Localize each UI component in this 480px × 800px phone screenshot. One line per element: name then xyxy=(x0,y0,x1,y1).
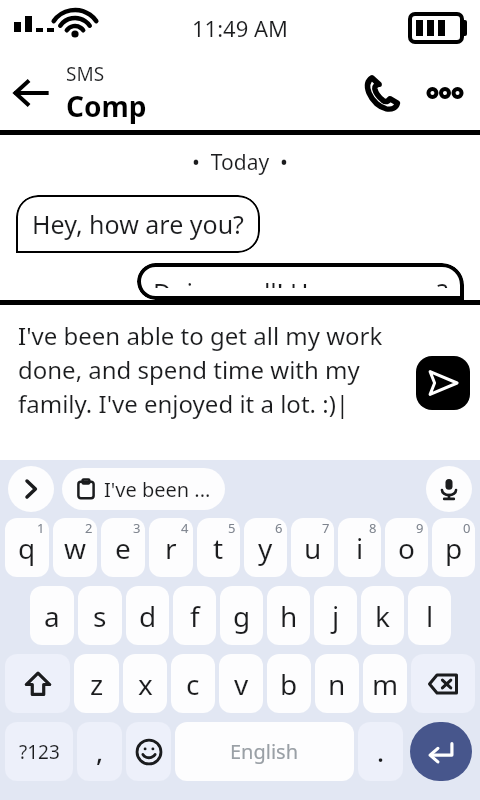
staticText: h xyxy=(280,597,298,635)
staticText: i xyxy=(356,529,364,567)
staticText: n xyxy=(328,665,346,703)
button[interactable]: h xyxy=(267,586,310,645)
button[interactable]: t xyxy=(197,518,240,577)
button[interactable]: k xyxy=(361,586,404,645)
button[interactable]: Expand toolbar xyxy=(8,466,54,512)
button[interactable]: Doing well! How are you? xyxy=(137,263,464,300)
button[interactable]: Hey, how are you? xyxy=(16,195,260,253)
staticText: d xyxy=(139,597,157,635)
button[interactable]: y xyxy=(244,518,287,577)
button[interactable]: Send xyxy=(416,356,470,410)
staticText: Comp xyxy=(66,87,147,125)
button[interactable]: I've been ... xyxy=(62,468,225,510)
button[interactable]: More options xyxy=(414,62,476,124)
staticText: 7 xyxy=(322,519,330,537)
button[interactable]: z xyxy=(74,654,119,713)
button[interactable]: Shift xyxy=(5,654,70,713)
staticText: x xyxy=(138,665,153,703)
staticText: I've been able to get all my work done, … xyxy=(18,319,410,420)
staticText: y xyxy=(258,529,273,567)
staticText: • Today • xyxy=(0,148,480,177)
staticText: t xyxy=(213,529,224,567)
staticText: , xyxy=(96,734,104,769)
staticText: ?123 xyxy=(19,739,60,765)
staticText: 11:49 AM xyxy=(192,13,288,43)
button[interactable]: Voice input xyxy=(426,466,472,512)
staticText: u xyxy=(304,529,322,567)
staticText: 4 xyxy=(181,519,189,537)
staticText: 8 xyxy=(369,519,377,537)
staticText: o xyxy=(398,529,415,567)
staticText: m xyxy=(372,665,399,703)
staticText: p xyxy=(445,529,463,567)
button[interactable]: b xyxy=(267,654,311,713)
button[interactable]: Backspace xyxy=(411,654,475,713)
staticText: w xyxy=(64,529,87,567)
button[interactable]: . xyxy=(358,722,403,781)
staticText: Doing well! How are you? xyxy=(153,275,448,288)
staticText: 2 xyxy=(85,519,93,537)
staticText: g xyxy=(233,597,251,635)
staticText: j xyxy=(332,597,340,635)
staticText: v xyxy=(234,665,249,703)
button[interactable]: , xyxy=(77,722,122,781)
button[interactable]: g xyxy=(220,586,263,645)
button[interactable]: l xyxy=(408,586,451,645)
button[interactable]: I've been able to get all my work done, … xyxy=(0,305,416,460)
staticText: I've been ... xyxy=(104,476,211,503)
staticText: a xyxy=(44,597,60,635)
button[interactable]: j xyxy=(314,586,357,645)
button[interactable]: f xyxy=(173,586,216,645)
button[interactable]: Call xyxy=(350,61,414,125)
button[interactable]: w xyxy=(53,518,97,577)
button[interactable]: r xyxy=(149,518,193,577)
staticText: f xyxy=(190,597,200,635)
button[interactable]: m xyxy=(363,654,407,713)
staticText: English xyxy=(230,738,299,765)
staticText: 5 xyxy=(228,519,236,537)
button[interactable]: o xyxy=(385,518,428,577)
button[interactable]: Enter xyxy=(410,722,472,781)
staticText: r xyxy=(165,529,177,567)
button[interactable]: ?123 xyxy=(5,722,73,781)
button[interactable]: Back xyxy=(0,62,62,124)
button[interactable]: e xyxy=(101,518,145,577)
staticText: 1 xyxy=(37,519,45,537)
button[interactable]: English xyxy=(175,722,354,781)
button[interactable]: d xyxy=(126,586,169,645)
button[interactable]: n xyxy=(315,654,359,713)
button[interactable]: c xyxy=(171,654,215,713)
button[interactable]: x xyxy=(123,654,167,713)
button[interactable]: v xyxy=(219,654,263,713)
staticText: z xyxy=(90,665,104,703)
staticText: b xyxy=(280,665,298,703)
staticText: 3 xyxy=(133,519,141,537)
staticText: q xyxy=(18,529,36,567)
button[interactable]: p xyxy=(432,518,475,577)
staticText: l xyxy=(426,597,434,635)
button[interactable]: s xyxy=(78,586,122,645)
staticText: Hey, how are you? xyxy=(32,207,244,241)
staticText: e xyxy=(115,529,131,567)
button[interactable]: a xyxy=(30,586,74,645)
staticText: c xyxy=(186,665,200,703)
staticText: SMS xyxy=(66,61,105,87)
button[interactable]: q xyxy=(5,518,49,577)
staticText: 6 xyxy=(275,519,283,537)
staticText: s xyxy=(93,597,107,635)
button[interactable]: i xyxy=(338,518,381,577)
staticText: 0 xyxy=(463,519,471,537)
staticText: . xyxy=(377,734,385,769)
staticText: 9 xyxy=(416,519,424,537)
button[interactable]: Emoji xyxy=(126,722,171,781)
button[interactable]: u xyxy=(291,518,334,577)
staticText: k xyxy=(375,597,390,635)
